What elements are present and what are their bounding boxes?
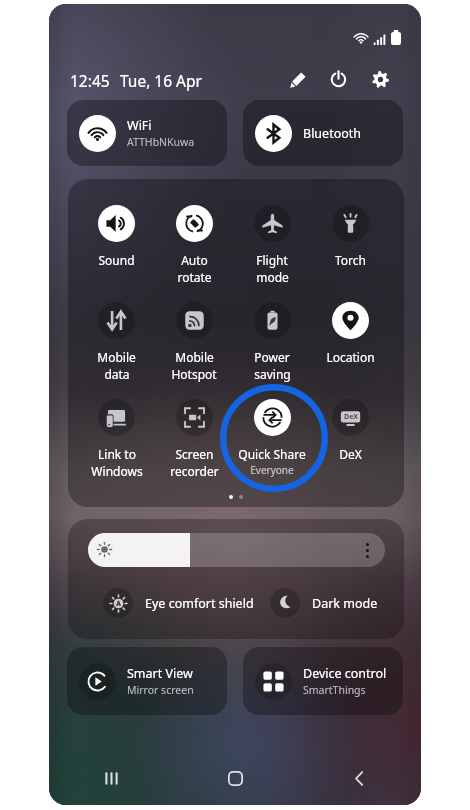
staticText: SmartThings (303, 683, 366, 697)
staticText: Screen (175, 446, 214, 462)
staticText: Mobile (97, 349, 136, 365)
staticText: Location (326, 349, 375, 365)
button[interactable]: DeX (311, 399, 389, 496)
staticText: Flight (256, 252, 288, 268)
staticText: recorder (170, 463, 219, 479)
staticText: Quick Share (238, 446, 306, 462)
staticText: Auto (181, 252, 208, 268)
staticText: data (104, 366, 130, 382)
button[interactable]: Device control (243, 647, 403, 715)
staticText: Torch (335, 252, 366, 268)
staticText: ATTHbNKuwa (127, 135, 195, 149)
button[interactable]: Recents (49, 751, 173, 805)
button[interactable]: Quick Share (233, 399, 311, 496)
button[interactable]: Settings (365, 64, 396, 95)
button[interactable]: Smart View (67, 647, 227, 715)
staticText: 12:45 (70, 70, 110, 91)
button[interactable]: Link to (78, 399, 155, 496)
staticText: Dark mode (312, 595, 378, 612)
staticText: Bluetooth (303, 125, 362, 142)
staticText: saving (254, 366, 291, 382)
button[interactable]: Power (233, 302, 311, 399)
staticText: Power (254, 349, 290, 365)
button[interactable]: Sound (78, 205, 155, 302)
staticText: WiFi (127, 117, 152, 134)
button[interactable]: Dark mode (270, 588, 378, 618)
staticText: DeX (339, 446, 362, 462)
staticText: Link to (98, 446, 136, 462)
button[interactable]: Back (297, 751, 421, 805)
staticText: Mirror screen (127, 683, 194, 697)
staticText: Eye comfort shield (145, 595, 254, 612)
staticText: Mobile (175, 349, 214, 365)
button[interactable]: Power (323, 64, 354, 95)
staticText: rotate (177, 269, 212, 285)
button[interactable]: Screen (155, 399, 233, 496)
button[interactable]: Mobile (78, 302, 155, 399)
staticText: Windows (91, 463, 143, 479)
staticText: Smart View (127, 665, 193, 682)
button[interactable]: Flight (233, 205, 311, 302)
button[interactable]: Eye comfort shield (103, 588, 254, 618)
button[interactable]: Edit quick settings (282, 64, 313, 95)
staticText: Tue, 16 Apr (120, 70, 202, 91)
button[interactable]: Brightness (88, 533, 385, 567)
button[interactable]: Home (173, 751, 297, 805)
button[interactable]: Bluetooth (243, 100, 403, 166)
staticText: Everyone (250, 463, 294, 477)
staticText: Sound (98, 252, 135, 268)
staticText: DeX (344, 412, 358, 422)
button[interactable]: Auto (155, 205, 233, 302)
staticText: Hotspot (171, 366, 217, 382)
button[interactable]: Torch (311, 205, 389, 302)
button[interactable]: WiFi (67, 100, 227, 166)
staticText: Device control (303, 665, 387, 682)
button[interactable]: Location (311, 302, 389, 399)
button[interactable]: Mobile (155, 302, 233, 399)
staticText: mode (256, 269, 289, 285)
